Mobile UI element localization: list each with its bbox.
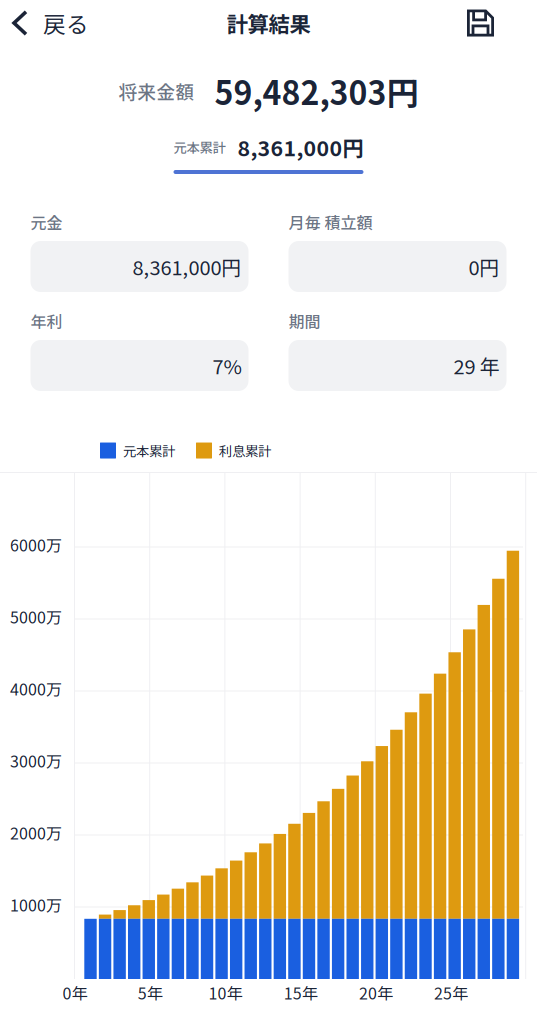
staticText: 戻る [43,7,89,39]
staticText: 10年 [208,981,242,1004]
staticText: 1000万 [10,893,62,916]
staticText: 2000万 [10,821,62,844]
staticText: 4000万 [10,677,62,700]
staticText: 元金 [30,210,62,234]
staticText: 0年 [63,981,88,1004]
staticText: 3000万 [10,749,62,772]
staticText: 8,361,000円 [237,132,363,162]
staticText: 期間 [288,309,320,333]
staticText: 月毎 積立額 [288,210,372,234]
staticText: 計算結果 [226,8,310,38]
staticText: 将来金額 [118,77,194,104]
staticText: 8,361,000円 [132,252,241,281]
staticText: 59,482,303円 [214,68,418,114]
staticText: 29 年 [453,351,499,380]
staticText: 7% [212,351,241,380]
button[interactable]: 戻る [0,0,99,46]
staticText: 0円 [468,252,499,281]
staticText: 15年 [284,981,318,1004]
staticText: 利息累計 [219,441,271,460]
button[interactable]: 保存 [451,0,537,46]
staticText: 元本累計 [173,137,225,157]
staticText: 年利 [30,309,62,333]
staticText: 5年 [138,981,163,1004]
staticText: 6000万 [10,533,62,556]
staticText: 25年 [434,981,468,1004]
staticText: 20年 [359,981,393,1004]
staticText: 5000万 [10,605,62,628]
staticText: 元本累計 [123,441,175,460]
